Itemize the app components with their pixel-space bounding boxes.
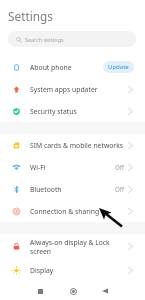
button[interactable]: About phone [0, 56, 145, 78]
button[interactable]: Bluetooth [0, 178, 145, 200]
staticText: System apps updater [30, 85, 98, 94]
staticText: Settings [8, 8, 53, 24]
button[interactable]: Recents [31, 282, 49, 300]
staticText: Off [115, 163, 125, 171]
button[interactable]: Wi-Fi [0, 156, 145, 178]
staticText: Search settings [25, 36, 64, 43]
staticText: Always-on display & Lock screen [30, 238, 110, 256]
button[interactable]: Back [96, 282, 114, 300]
staticText: Security status [30, 107, 77, 116]
staticText: Display [30, 266, 54, 275]
button[interactable]: SIM cards & mobile networks [0, 134, 145, 156]
staticText: Wi-Fi [30, 163, 46, 172]
staticText: Update [108, 63, 129, 71]
staticText: SIM cards & mobile networks [30, 141, 124, 150]
button[interactable]: Connection & sharing [0, 200, 145, 222]
button[interactable]: Home [64, 282, 82, 300]
button[interactable]: System apps updater [0, 78, 145, 100]
button[interactable]: Security status [0, 100, 145, 122]
button[interactable]: Update [103, 61, 134, 73]
button[interactable]: Display [0, 259, 145, 281]
staticText: Connection & sharing [30, 207, 100, 216]
staticText: Bluetooth [30, 185, 62, 194]
staticText: Off [115, 185, 125, 193]
staticText: About phone [30, 63, 72, 72]
button[interactable]: Always-on display & Lock screen [0, 234, 145, 259]
button[interactable]: Search settings [8, 31, 136, 47]
